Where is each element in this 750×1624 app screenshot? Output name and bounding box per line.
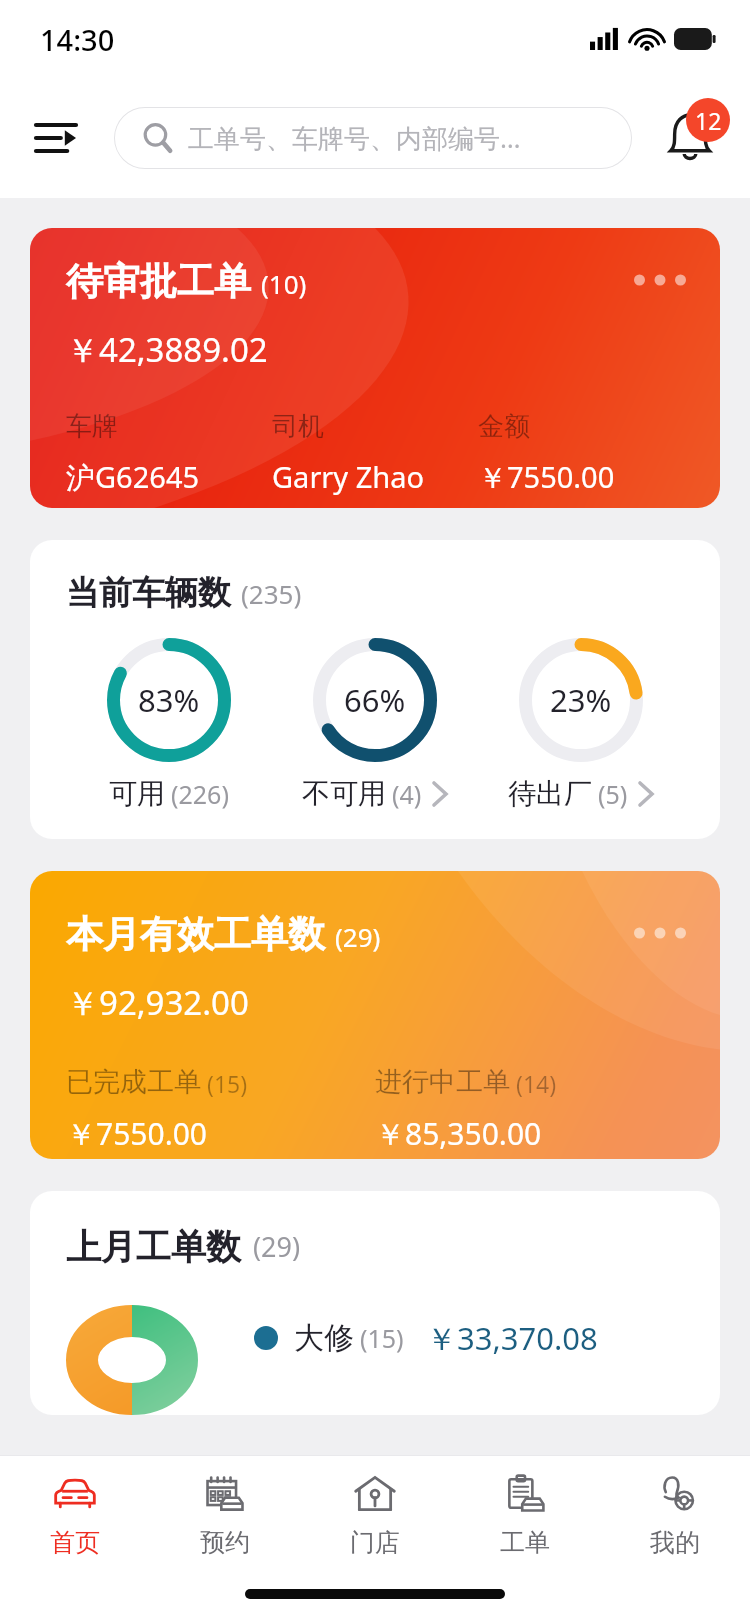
- staticText: 已完成工单: [66, 1065, 201, 1099]
- staticText: 14:30: [40, 20, 115, 59]
- staticText: ￥33,370.08: [426, 1317, 598, 1359]
- button[interactable]: 首页: [0, 1456, 150, 1572]
- staticText: 83%: [138, 679, 200, 721]
- button[interactable]: 我的: [600, 1456, 750, 1572]
- button[interactable]: Notifications: [658, 106, 722, 170]
- button[interactable]: 本月有效工单数: [30, 871, 720, 1159]
- staticText: ￥42,3889.02: [66, 327, 268, 372]
- button[interactable]: 门店: [300, 1456, 450, 1572]
- button[interactable]: 待审批工单: [30, 228, 720, 508]
- button[interactable]: More options: [630, 262, 690, 298]
- staticText: (14): [516, 1068, 557, 1099]
- staticText: 金额: [478, 410, 530, 443]
- staticText: ￥85,350.00: [375, 1113, 542, 1154]
- staticText: (5): [598, 777, 628, 811]
- button[interactable]: More options: [630, 915, 690, 951]
- staticText: 车牌: [66, 410, 118, 443]
- staticText: ￥7550.00: [478, 457, 615, 497]
- staticText: (15): [207, 1068, 248, 1099]
- staticText: 23%: [550, 679, 612, 721]
- staticText: 首页: [50, 1527, 100, 1558]
- staticText: ￥7550.00: [66, 1113, 207, 1154]
- staticText: 可用: [109, 776, 165, 811]
- staticText: (10): [261, 266, 307, 301]
- button[interactable]: 23%: [478, 638, 684, 811]
- staticText: 司机: [272, 410, 324, 443]
- staticText: 待出厂: [508, 776, 592, 811]
- staticText: (15): [360, 1321, 404, 1355]
- staticText: 进行中工单: [375, 1065, 510, 1099]
- staticText: 大修: [294, 1319, 354, 1357]
- staticText: 沪G62645: [66, 457, 200, 497]
- staticText: ￥92,932.00: [66, 980, 249, 1025]
- staticText: (29): [335, 919, 381, 954]
- staticText: 工单号、车牌号、内部编号…: [188, 120, 521, 156]
- staticText: 预约: [200, 1527, 250, 1558]
- button[interactable]: 工单号、车牌号、内部编号…: [114, 107, 632, 169]
- staticText: 66%: [344, 679, 406, 721]
- staticText: 12: [695, 105, 722, 136]
- button[interactable]: 83%: [66, 638, 272, 811]
- button[interactable]: 预约: [150, 1456, 300, 1572]
- button[interactable]: 工单: [450, 1456, 600, 1572]
- staticText: (226): [171, 777, 229, 811]
- staticText: 我的: [650, 1527, 700, 1558]
- staticText: 当前车辆数: [66, 572, 231, 614]
- staticText: 上月工单数: [66, 1225, 241, 1269]
- staticText: 待审批工单: [66, 258, 251, 305]
- staticText: (29): [253, 1228, 301, 1265]
- staticText: 不可用: [302, 776, 386, 811]
- staticText: Garry Zhao: [272, 457, 424, 496]
- staticText: 本月有效工单数: [66, 911, 325, 958]
- staticText: 门店: [350, 1527, 400, 1558]
- staticText: (4): [392, 777, 422, 811]
- staticText: 工单: [500, 1527, 550, 1558]
- staticText: (235): [241, 576, 302, 611]
- button[interactable]: 66%: [272, 638, 478, 811]
- button[interactable]: Menu: [28, 110, 84, 166]
